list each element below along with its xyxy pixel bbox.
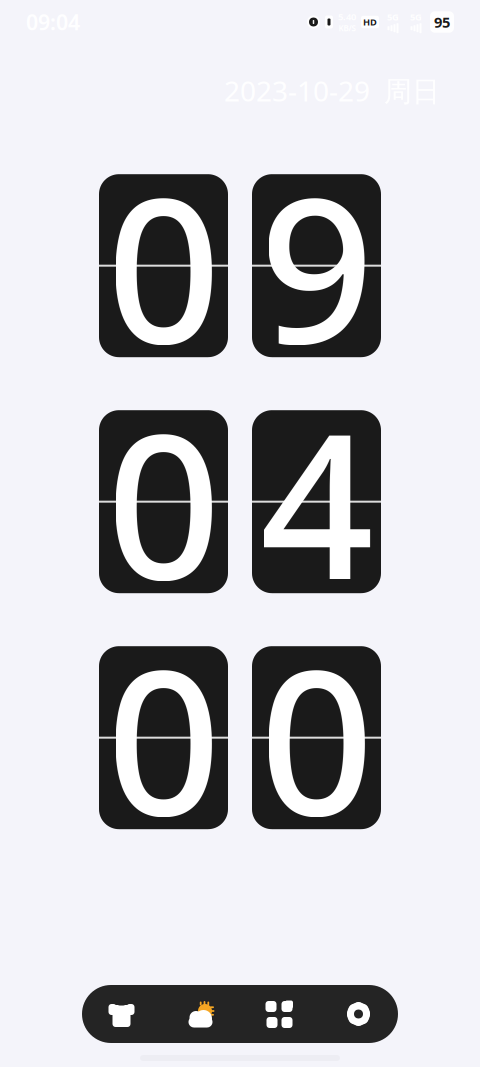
- staticText: 5G: [410, 11, 422, 23]
- staticText: HD: [363, 16, 377, 28]
- staticText: 5G: [387, 11, 399, 23]
- button[interactable]: Outfits: [82, 985, 161, 1043]
- button[interactable]: Weather: [161, 985, 240, 1043]
- staticText: 0: [106, 605, 220, 870]
- staticText: 0: [106, 133, 220, 398]
- staticText: 0: [106, 369, 220, 634]
- staticText: 5.40: [338, 10, 356, 23]
- staticText: 09:04: [26, 8, 80, 36]
- staticText: 95: [434, 12, 450, 32]
- staticText: 9: [259, 133, 373, 398]
- staticText: 4: [259, 369, 373, 634]
- staticText: KB/S: [338, 23, 355, 33]
- staticText: 0: [259, 605, 373, 870]
- button[interactable]: Widgets: [240, 985, 319, 1043]
- staticText: 2023-10-29 周日: [224, 72, 440, 109]
- button[interactable]: Settings: [319, 985, 398, 1043]
